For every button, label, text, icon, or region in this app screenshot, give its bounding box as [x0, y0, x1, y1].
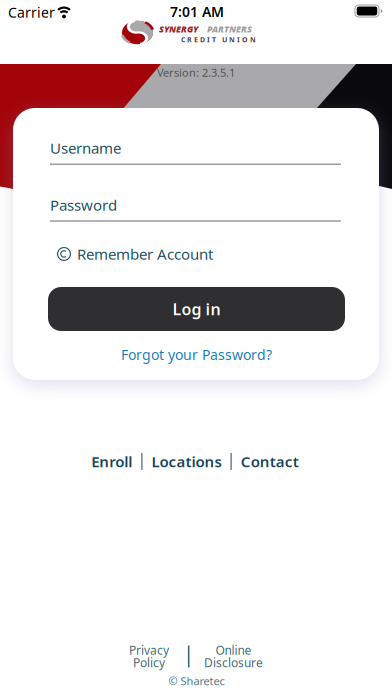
staticText: C R E D I T U N I O N: [181, 35, 256, 44]
button[interactable]: Privacy: [114, 643, 184, 669]
button[interactable]: Contact: [241, 451, 299, 471]
staticText: PARTNERS: [207, 23, 252, 35]
staticText: Locations: [151, 451, 221, 471]
staticText: Username: [50, 138, 121, 158]
staticText: SYNERGY: [159, 23, 198, 35]
button[interactable]: Remember Account: [57, 244, 213, 264]
button[interactable]: Locations: [151, 451, 221, 471]
staticText: 7:01 AM: [170, 2, 224, 21]
button[interactable]: Password: [48, 187, 344, 223]
staticText: © Sharetec: [168, 674, 224, 688]
staticText: Version: 2.3.5.1: [157, 65, 235, 80]
staticText: Privacy: [129, 642, 169, 658]
staticText: Online: [215, 642, 251, 658]
staticText: Disclosure: [204, 654, 263, 670]
staticText: Password: [50, 195, 117, 215]
staticText: Contact: [241, 451, 299, 471]
staticText: Forgot your Password?: [121, 345, 272, 364]
button[interactable]: Forgot your Password?: [121, 345, 272, 364]
button[interactable]: Enroll: [91, 451, 132, 471]
button[interactable]: Online: [191, 643, 275, 669]
staticText: Enroll: [91, 451, 132, 471]
button[interactable]: Log in: [48, 287, 345, 331]
staticText: Carrier: [8, 3, 55, 22]
staticText: Log in: [172, 298, 220, 320]
button[interactable]: Username: [48, 130, 344, 166]
staticText: Policy: [133, 654, 165, 670]
staticText: Remember Account: [77, 244, 213, 264]
